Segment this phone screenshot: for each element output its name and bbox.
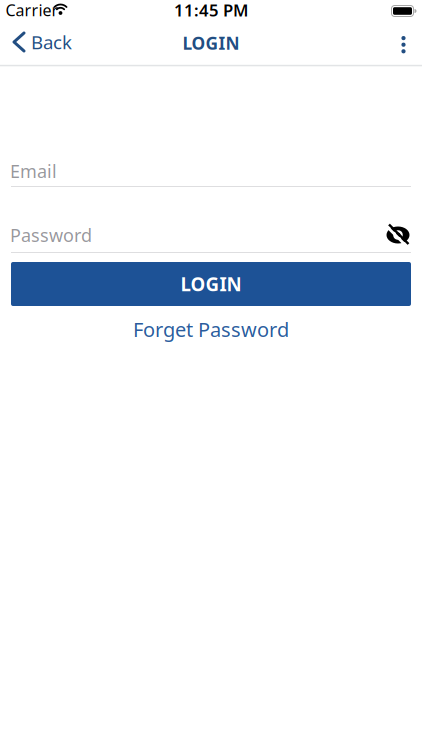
textField[interactable]: Email	[10, 159, 57, 183]
button[interactable]: Show password	[382, 219, 414, 251]
staticText: Back	[31, 30, 72, 54]
secureTextField[interactable]: Password	[10, 223, 92, 247]
staticText: Carrier	[5, 0, 58, 21]
staticText: Password	[10, 223, 92, 247]
button[interactable]: LOGIN	[11, 262, 411, 306]
staticText: LOGIN	[182, 31, 239, 54]
button[interactable]: More options	[387, 28, 420, 61]
staticText: Email	[10, 159, 57, 183]
staticText: 11:45 PM	[174, 0, 248, 21]
staticText: Forget Password	[133, 316, 289, 343]
staticText: LOGIN	[180, 272, 241, 296]
button[interactable]: Back	[0, 24, 80, 60]
button[interactable]: Forget Password	[125, 312, 297, 347]
